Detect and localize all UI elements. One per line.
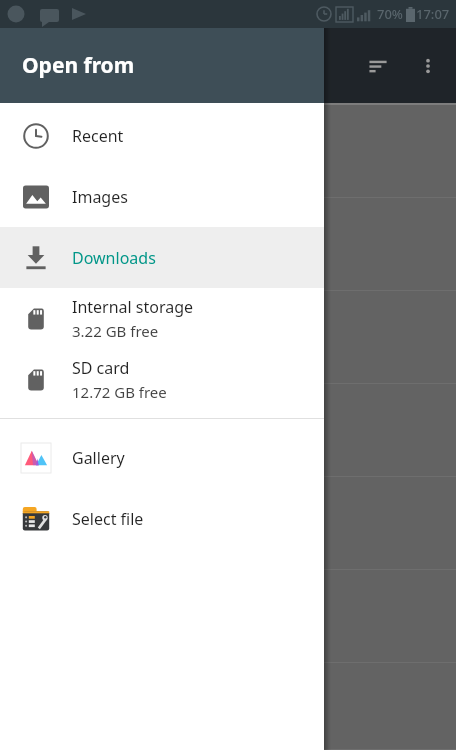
button[interactable]: Images bbox=[0, 166, 324, 227]
button[interactable]: t.ir.apk bbox=[0, 291, 456, 384]
button[interactable]: Recent bbox=[0, 105, 324, 166]
staticText: Images bbox=[72, 186, 128, 208]
staticText: 17:07 bbox=[416, 5, 450, 23]
staticText: Version-5.jpg bbox=[4, 128, 109, 151]
button[interactable]: Open from bbox=[0, 28, 324, 103]
button[interactable]: Version-5.jpg bbox=[0, 105, 456, 198]
button[interactable]: ng.png bbox=[0, 198, 456, 291]
button[interactable]: Downloads bbox=[0, 227, 324, 288]
staticText: t.ir.apk bbox=[4, 314, 58, 337]
button[interactable]: More options bbox=[404, 42, 452, 90]
staticText: Recent bbox=[72, 125, 124, 147]
button[interactable]: Internal storage bbox=[0, 288, 324, 349]
staticText: Open from bbox=[22, 51, 135, 80]
staticText: us-terius-be… bbox=[4, 434, 101, 454]
staticText: 12.72 GB free bbox=[72, 382, 167, 402]
staticText: Internal storage bbox=[72, 296, 194, 318]
button[interactable]: _53025.mp4 bbox=[0, 663, 456, 750]
button[interactable]: Gallery bbox=[0, 427, 324, 488]
button[interactable]: SD card bbox=[0, 349, 324, 410]
staticText: Downloads bbox=[72, 247, 156, 269]
staticText: 1882654.zip bbox=[4, 407, 100, 430]
button[interactable]: Select file bbox=[0, 488, 324, 549]
staticText: ng.png bbox=[4, 233, 61, 256]
staticText: 70% bbox=[377, 5, 403, 23]
button[interactable]: Sort bbox=[356, 42, 404, 90]
staticText: Gallery bbox=[72, 447, 125, 469]
staticText: 3.22 GB free bbox=[72, 321, 159, 341]
button[interactable]: 3 _2.rar bbox=[0, 477, 456, 570]
button[interactable]: f bbox=[0, 570, 456, 663]
button[interactable]: 1882654.zip bbox=[0, 384, 456, 477]
staticText: 3 _2.rar bbox=[4, 512, 64, 535]
staticText: SD card bbox=[72, 357, 130, 379]
staticText: Select file bbox=[72, 508, 144, 530]
